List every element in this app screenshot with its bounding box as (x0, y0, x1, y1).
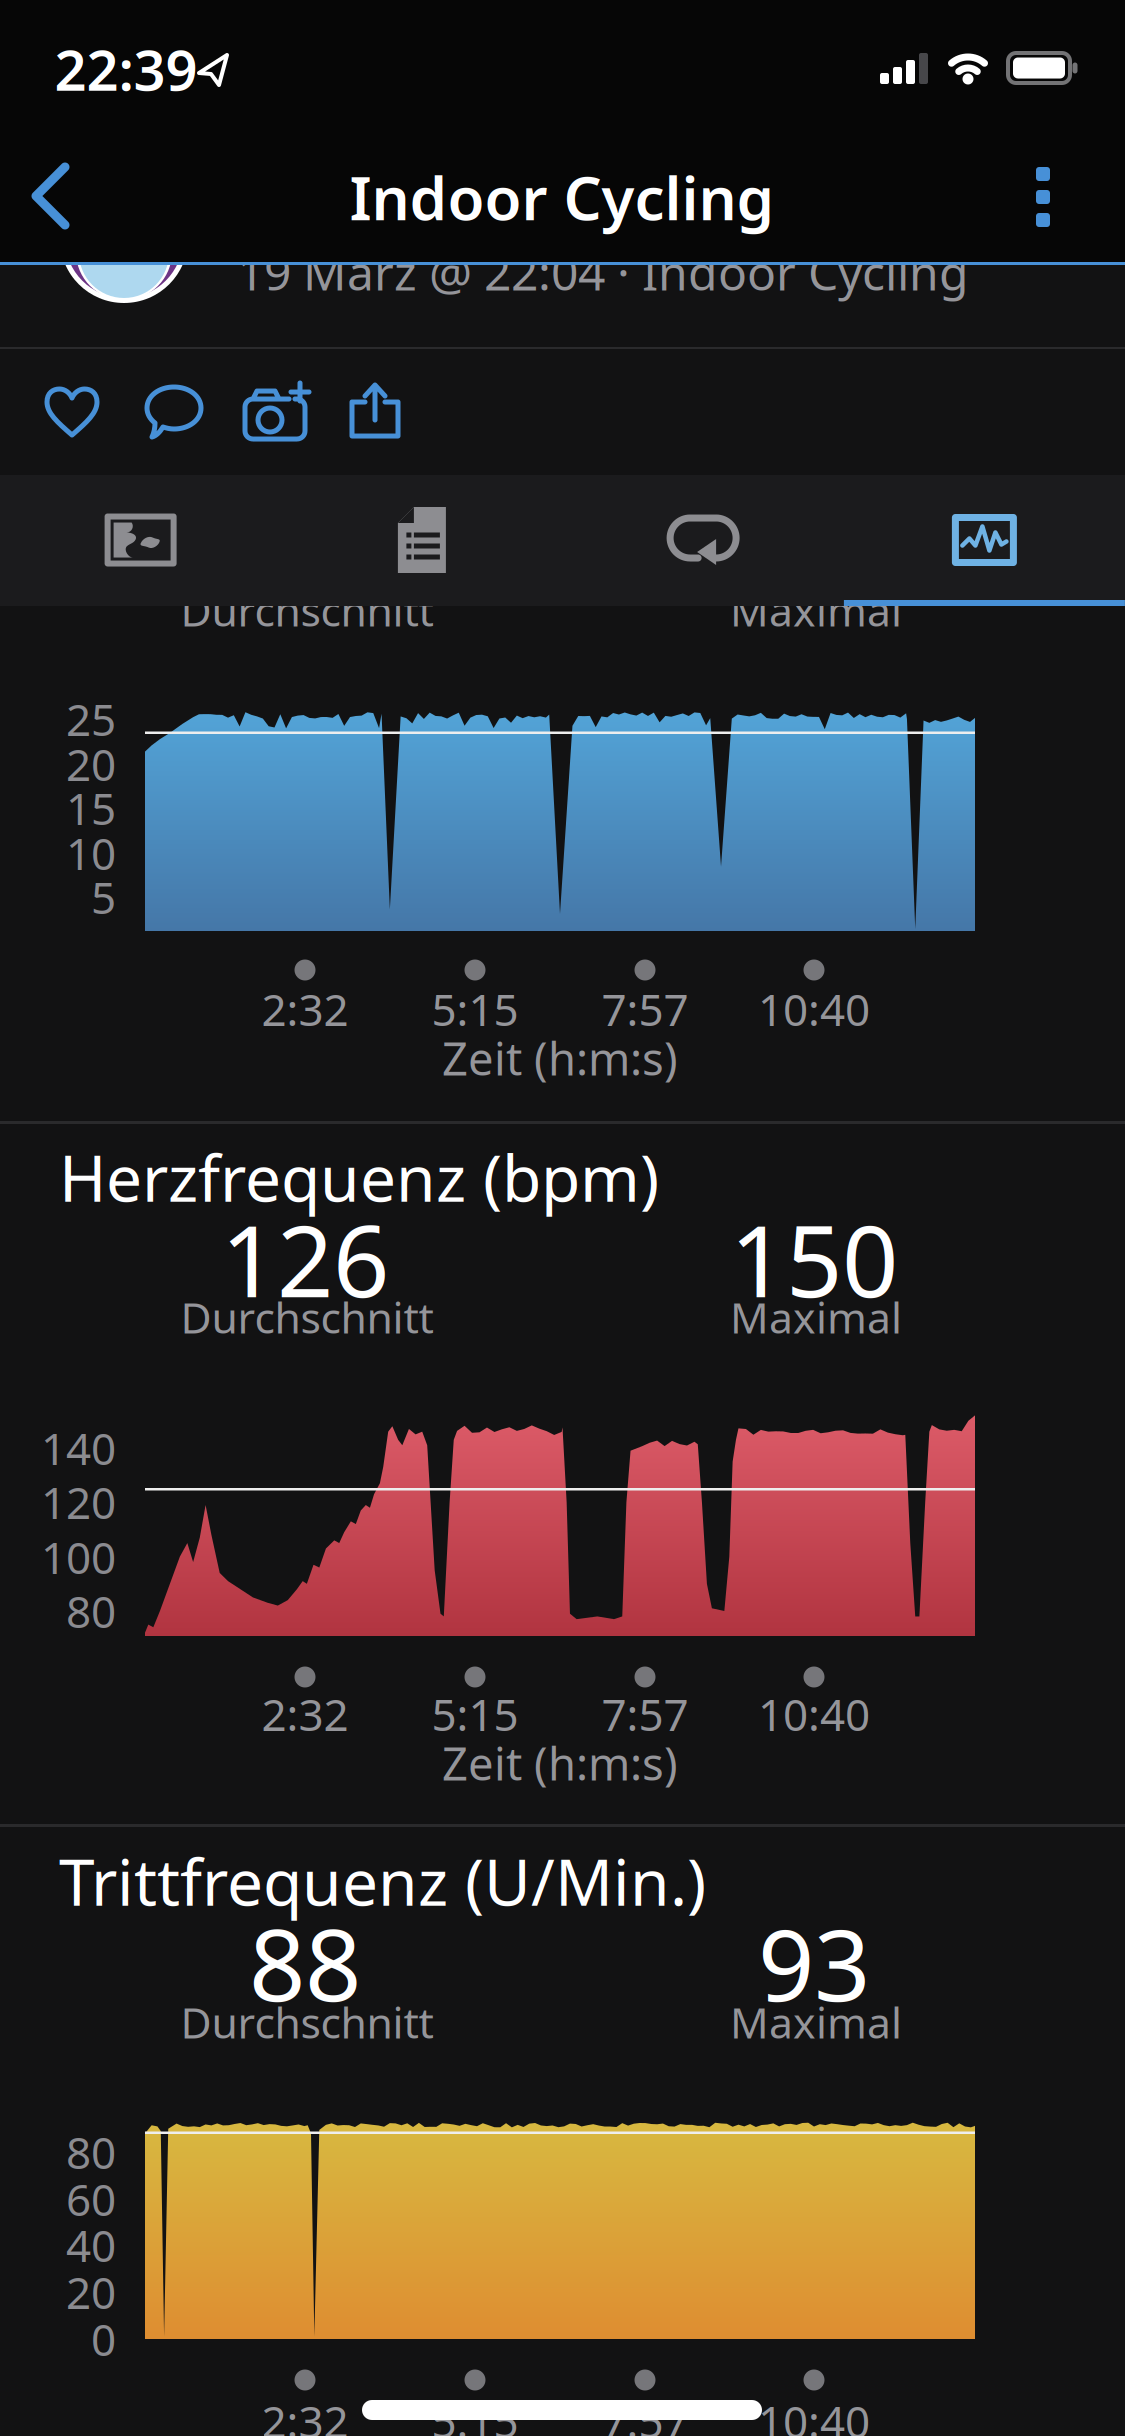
staticText: 5:15 (431, 2392, 518, 2436)
button[interactable]: Diagramme (844, 474, 1125, 605)
staticText: 80 (66, 1582, 116, 1640)
staticText: 7:57 (601, 2392, 688, 2436)
staticText: 20 (66, 735, 116, 793)
button[interactable]: Teilen (330, 366, 420, 456)
staticText: 10:40 (758, 1685, 870, 1743)
staticText: 126 (221, 1193, 389, 1324)
staticText: 22:39 (54, 32, 197, 106)
staticText: Trittfrequenz (U/Min.) (59, 1838, 706, 1923)
staticText: 93 (758, 1897, 870, 2028)
staticText: 25 (66, 690, 116, 748)
staticText: 88 (249, 1897, 361, 2028)
staticText: 5:15 (431, 980, 518, 1038)
staticText: 140 (41, 1419, 116, 1477)
staticText: Herzfrequenz (bpm) (59, 1134, 659, 1219)
staticText: 7:57 (601, 980, 688, 1038)
staticText: 100 (41, 1528, 116, 1586)
staticText: 5:15 (431, 1685, 518, 1743)
staticText: 10:40 (758, 980, 870, 1038)
button[interactable]: Gefällt mir (27, 367, 117, 457)
staticText: Zeit (h:m:s) (442, 1028, 678, 1088)
button[interactable]: Zurück (4, 137, 100, 257)
staticText: 19 März @ 22:04 · Indoor Cycling (237, 240, 969, 304)
staticText: Durchschnitt (180, 582, 433, 638)
button[interactable]: Details (281, 474, 562, 605)
staticText: 120 (41, 1473, 116, 1531)
staticText: Indoor Cycling (349, 157, 774, 237)
staticText: 60 (66, 2170, 116, 2228)
button[interactable]: Intervalle (563, 474, 844, 605)
staticText: 20 (66, 2263, 116, 2321)
staticText: Durchschnitt (180, 1289, 433, 1345)
staticText: 7:57 (601, 1685, 688, 1743)
staticText: 10:40 (758, 2392, 870, 2436)
staticText: 2:32 (261, 2392, 348, 2436)
staticText: 40 (66, 2216, 116, 2274)
staticText: 0 (91, 2310, 116, 2368)
button[interactable]: Kommentieren (130, 367, 220, 457)
staticText: 80 (66, 2123, 116, 2181)
staticText: 2:32 (261, 1685, 348, 1743)
button[interactable]: Foto hinzufügen (230, 367, 326, 457)
staticText: Zeit (h:m:s) (442, 1733, 678, 1793)
staticText: 15 (66, 779, 116, 837)
staticText: Maximal (730, 582, 902, 638)
staticText: Durchschnitt (180, 1994, 433, 2050)
staticText: 150 (730, 1193, 898, 1324)
staticText: Maximal (730, 1289, 902, 1345)
button[interactable]: Mehr (1008, 152, 1078, 242)
button[interactable]: Karte (0, 474, 281, 605)
staticText: Maximal (730, 1994, 902, 2050)
staticText: 10 (66, 824, 116, 882)
staticText: 5 (91, 868, 116, 926)
staticText: 2:32 (261, 980, 348, 1038)
